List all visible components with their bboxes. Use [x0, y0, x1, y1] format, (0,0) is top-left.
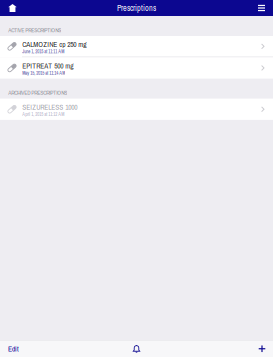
staticText: ACTIVE PRESCRIPTIONS	[8, 26, 61, 34]
button[interactable]: CALMOZINE cp 250 mg	[0, 36, 273, 57]
staticText: CALMOZINE cp 250 mg	[22, 40, 86, 48]
staticText: June 1, 2015 at 11:11 AM	[22, 48, 64, 54]
button[interactable]: SEIZURELESS 1000	[0, 99, 273, 120]
button[interactable]: Add prescription	[251, 340, 273, 357]
button[interactable]: EPITREAT 500 mg	[0, 57, 273, 79]
button[interactable]: Home	[0, 0, 25, 16]
staticText: Edit	[8, 344, 19, 354]
staticText: ARCHIVED PRESCRIPTIONS	[8, 89, 67, 97]
staticText: Prescriptions	[117, 2, 156, 13]
staticText: April 1, 2015 at 11:12 AM	[22, 111, 64, 117]
staticText: EPITREAT 500 mg	[22, 62, 73, 70]
button[interactable]: Edit	[0, 340, 40, 357]
button[interactable]: Menu	[251, 0, 273, 16]
staticText: May 15, 2015 at 11:14 AM	[22, 70, 65, 76]
button[interactable]: Notifications	[124, 340, 148, 357]
staticText: SEIZURELESS 1000	[22, 103, 77, 111]
